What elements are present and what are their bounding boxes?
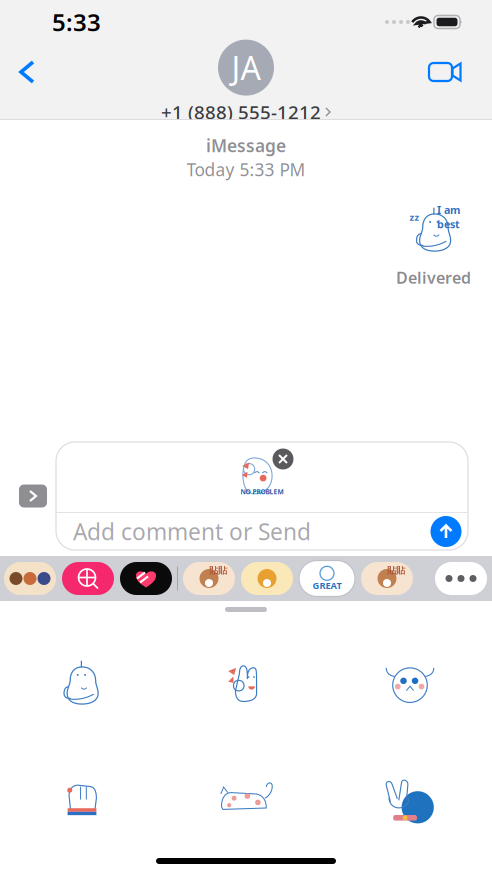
staticText: 貼貼 [209, 565, 227, 576]
staticText: Delivered [396, 267, 471, 288]
button[interactable]: Selected sticker pack [299, 560, 355, 596]
button[interactable]: Sticker pack 2 [241, 562, 293, 595]
staticText: iMessage [206, 134, 286, 157]
button[interactable]: Contact details [161, 40, 331, 124]
button[interactable]: Send [424, 512, 468, 550]
staticText: +1 (888) 555-1212 [161, 100, 321, 124]
button[interactable]: Sticker oval [328, 634, 492, 732]
staticText: 貼貼 [387, 565, 405, 576]
button[interactable]: FaceTime [429, 63, 461, 81]
button[interactable]: Store [62, 562, 114, 595]
staticText: 5:33 [52, 6, 101, 38]
staticText: GREAT [312, 579, 341, 592]
button[interactable]: Sticker fist [164, 634, 328, 732]
staticText: I am best [437, 203, 460, 231]
button[interactable]: Sticker pack 1 [183, 562, 235, 595]
staticText: zz [409, 211, 419, 223]
staticText: Add comment or Send [73, 516, 311, 546]
staticText: Today 5:33 PM [186, 158, 305, 181]
button[interactable]: Apps [10, 473, 56, 519]
button[interactable]: Sticker hand [0, 752, 164, 850]
button[interactable]: Sticker pack 3 [361, 562, 413, 595]
button[interactable]: Back [18, 60, 36, 84]
staticText: NO PROBLEM [240, 487, 283, 496]
button[interactable]: Sticker peace [328, 752, 492, 850]
button[interactable]: More [435, 562, 487, 595]
button[interactable]: Recents [4, 562, 56, 595]
button[interactable]: Digital Touch [120, 562, 172, 595]
button[interactable]: Sticker cat [164, 752, 328, 850]
staticText: JA [231, 46, 260, 89]
button[interactable]: Sticker blob [0, 634, 164, 732]
